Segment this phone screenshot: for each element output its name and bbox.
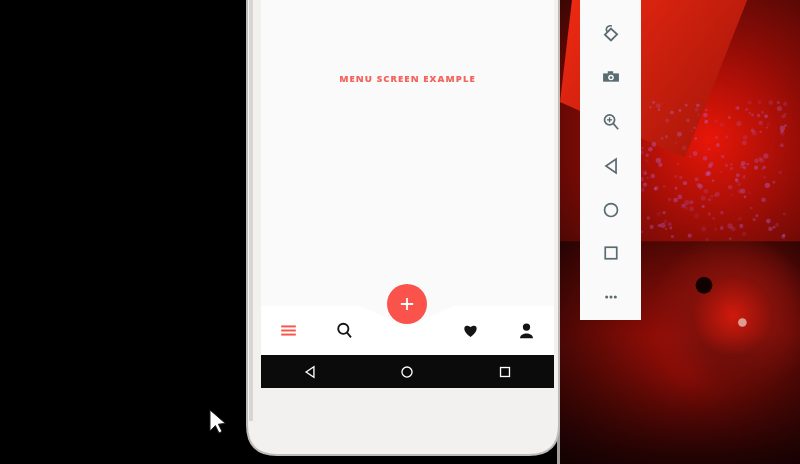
button[interactable]: Favorites: [442, 306, 498, 355]
button[interactable]: Overview: [580, 237, 641, 269]
button[interactable]: More: [580, 281, 641, 313]
button[interactable]: Menu: [261, 306, 316, 355]
button[interactable]: Recents: [456, 355, 554, 388]
button[interactable]: Rotate: [580, 18, 641, 50]
button[interactable]: Home: [580, 194, 641, 226]
button[interactable]: Back: [580, 150, 641, 182]
button[interactable]: Profile: [498, 306, 554, 355]
button[interactable]: Back: [261, 355, 358, 388]
button[interactable]: Zoom: [580, 106, 641, 138]
button[interactable]: Search: [316, 306, 372, 355]
staticText: MENU SCREEN EXAMPLE: [261, 72, 554, 85]
button[interactable]: Screenshot: [580, 61, 641, 93]
button[interactable]: Home: [358, 355, 456, 388]
button[interactable]: Add: [387, 284, 427, 324]
